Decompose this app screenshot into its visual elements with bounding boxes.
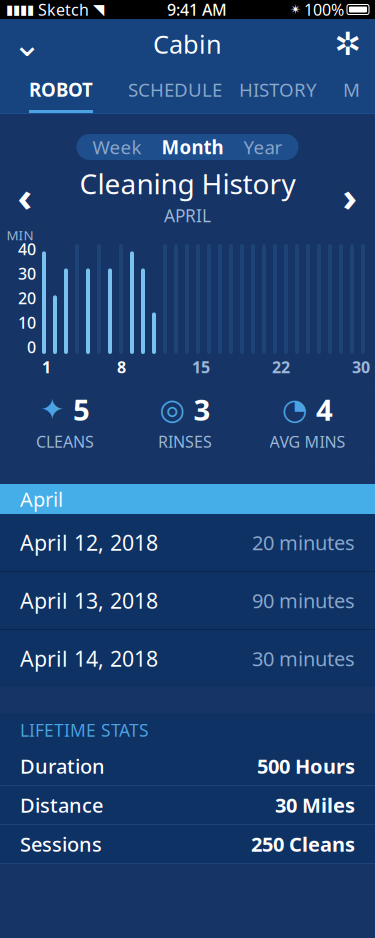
staticText: 500 Hours — [257, 753, 355, 779]
staticText: ◔ — [282, 393, 308, 426]
staticText: Week — [92, 135, 141, 159]
staticText: 20 minutes — [252, 529, 355, 556]
staticText: APRIL — [164, 204, 211, 227]
staticText: ◎ — [159, 393, 185, 426]
staticText: 30 — [352, 356, 370, 378]
staticText: Month — [161, 135, 223, 159]
staticText: AVG MINS — [269, 431, 345, 452]
staticText: ✦ — [40, 393, 65, 426]
staticText: MIN — [6, 226, 33, 244]
staticText: › — [342, 169, 357, 222]
staticText: 10 — [18, 312, 36, 333]
staticText: 100% — [304, 0, 344, 20]
staticText: 40 — [18, 238, 36, 260]
staticText: Cabin — [153, 27, 222, 61]
staticText: 0 — [27, 336, 36, 358]
staticText: ✴ — [290, 2, 301, 17]
button[interactable]: Month — [151, 134, 233, 160]
staticText: ◥ — [93, 1, 104, 18]
staticText: Year — [243, 135, 282, 159]
staticText: Sessions — [20, 831, 102, 857]
staticText: 3 — [193, 390, 210, 429]
staticText: 5 — [73, 390, 90, 429]
staticText: HISTORY — [239, 77, 317, 102]
staticText: ▮▮▮▮ — [6, 2, 34, 17]
staticText: April 13, 2018 — [20, 586, 158, 615]
staticText: CLEANS — [36, 431, 94, 452]
staticText: 30 — [18, 263, 36, 284]
staticText: 22 — [272, 356, 290, 378]
button[interactable]: April 14, 2018 — [0, 630, 375, 687]
staticText: Distance — [20, 792, 103, 818]
button[interactable]: SCHEDULE — [122, 69, 228, 113]
button[interactable]: M — [328, 69, 375, 113]
staticText: 8 — [117, 356, 126, 378]
staticText: RINSES — [158, 431, 212, 452]
button[interactable]: April 13, 2018 — [0, 572, 375, 629]
staticText: 30 minutes — [252, 645, 355, 672]
staticText: Duration — [20, 753, 105, 779]
staticText: Sketch — [38, 0, 89, 20]
staticText: 250 Cleans — [251, 831, 355, 857]
staticText: 9:41 AM — [167, 0, 227, 20]
staticText: 4 — [316, 390, 333, 429]
staticText: 20 — [18, 287, 36, 309]
staticText: ✲ — [334, 26, 361, 62]
staticText: April 12, 2018 — [20, 528, 158, 557]
staticText: ROBOT — [29, 77, 93, 102]
staticText: 15 — [192, 356, 210, 378]
staticText: April — [20, 486, 63, 512]
staticText: ⌄ — [12, 24, 41, 64]
button[interactable]: April 12, 2018 — [0, 514, 375, 571]
staticText: 1 — [42, 356, 51, 378]
button[interactable]: Week — [82, 134, 151, 160]
button[interactable]: HISTORY — [228, 69, 328, 113]
button[interactable]: ROBOT — [0, 69, 122, 113]
staticText: LIFETIME STATS — [20, 718, 149, 741]
button[interactable]: Previous month — [0, 171, 50, 221]
staticText: 30 Miles — [275, 792, 355, 818]
button[interactable]: Settings — [321, 19, 375, 69]
staticText: 90 minutes — [252, 587, 355, 614]
button[interactable]: Year — [233, 134, 292, 160]
staticText: M — [343, 77, 360, 102]
button[interactable]: Collapse — [0, 19, 54, 69]
staticText: SCHEDULE — [128, 77, 222, 102]
staticText: April 14, 2018 — [20, 644, 158, 673]
staticText: Cleaning History — [79, 165, 295, 202]
staticText: ‹ — [17, 169, 32, 222]
button[interactable]: Next month — [325, 171, 375, 221]
